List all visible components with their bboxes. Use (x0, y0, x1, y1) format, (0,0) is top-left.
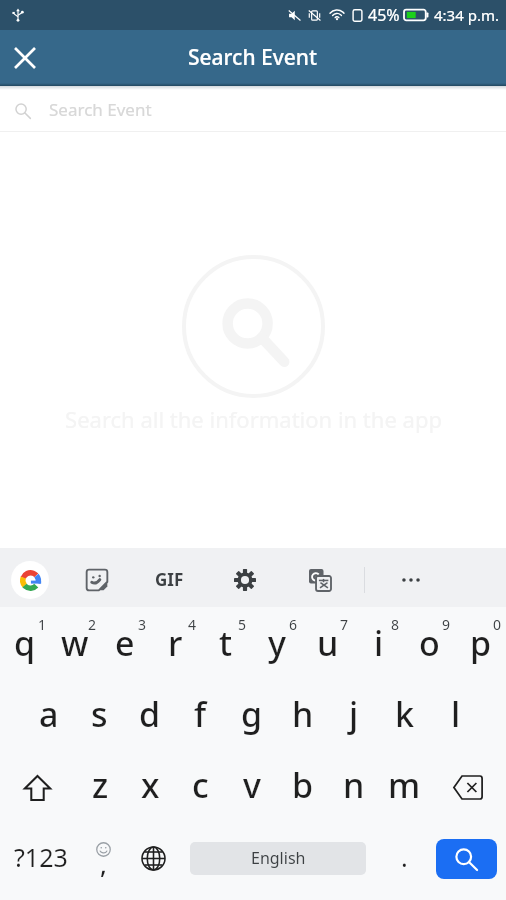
staticText: c (192, 762, 209, 808)
button[interactable]: ?123 (0, 823, 81, 894)
button[interactable]: More options (365, 550, 457, 609)
staticText: m (388, 762, 421, 808)
button[interactable]: Close (4, 37, 46, 79)
button[interactable]: Search Event (0, 90, 506, 131)
staticText: e (115, 620, 135, 666)
button[interactable]: t (200, 610, 251, 681)
button[interactable]: r (150, 610, 200, 681)
staticText: Search Event (188, 43, 318, 72)
staticText: 4 (188, 615, 197, 634)
staticText: d (139, 691, 161, 737)
staticText: z (92, 762, 109, 808)
button[interactable]: . (379, 823, 430, 894)
button[interactable]: n (328, 752, 379, 823)
button[interactable]: Backspace (430, 752, 506, 823)
staticText: f (194, 691, 207, 737)
staticText: t (219, 620, 233, 666)
staticText: 4:34 p.m. (434, 5, 499, 25)
staticText: 9 (442, 615, 451, 634)
button[interactable]: i (353, 610, 404, 681)
button[interactable]: v (226, 752, 277, 823)
staticText: ?123 (14, 840, 68, 874)
staticText: r (168, 620, 183, 666)
button[interactable]: d (124, 681, 175, 752)
staticText: Search all the information in the app (65, 404, 442, 434)
staticText: 45% (368, 4, 400, 26)
staticText: 6 (289, 615, 298, 634)
button[interactable]: j (328, 681, 379, 752)
staticText: w (61, 620, 89, 666)
button[interactable]: English (190, 842, 366, 875)
staticText: , (100, 847, 107, 881)
staticText: h (292, 691, 314, 737)
button[interactable]: q (0, 610, 50, 681)
button[interactable]: GIF (134, 550, 204, 609)
staticText: v (243, 762, 261, 808)
button[interactable]: a (24, 681, 74, 752)
button[interactable]: m (379, 752, 430, 823)
button[interactable]: p (455, 610, 506, 681)
button[interactable]: Translate (286, 550, 354, 609)
button[interactable]: Change language (124, 823, 177, 894)
button[interactable]: w (50, 610, 100, 681)
button[interactable]: l (430, 681, 481, 752)
staticText: 0 (493, 615, 502, 634)
staticText: 2 (88, 615, 97, 634)
button[interactable]: h (277, 681, 328, 752)
staticText: k (395, 691, 415, 737)
button[interactable]: Settings (204, 550, 286, 609)
staticText: a (39, 691, 59, 737)
staticText: 7 (340, 615, 349, 634)
staticText: j (349, 691, 359, 737)
button[interactable]: z (75, 752, 125, 823)
button[interactable]: , (81, 823, 124, 894)
staticText: 8 (391, 615, 400, 634)
staticText: u (317, 620, 339, 666)
button[interactable]: b (277, 752, 328, 823)
button[interactable]: o (404, 610, 455, 681)
staticText: 3 (138, 615, 147, 634)
button[interactable]: y (251, 610, 302, 681)
button[interactable]: k (379, 681, 430, 752)
staticText: q (14, 620, 36, 666)
staticText: English (251, 847, 306, 869)
staticText: g (241, 691, 263, 737)
button[interactable]: u (302, 610, 353, 681)
button[interactable]: s (74, 681, 124, 752)
button[interactable]: Google (0, 550, 60, 609)
staticText: Search Event (49, 98, 152, 121)
button[interactable]: c (175, 752, 226, 823)
staticText: . (401, 840, 408, 874)
staticText: s (91, 691, 108, 737)
staticText: n (343, 762, 365, 808)
staticText: l (451, 691, 461, 737)
staticText: b (292, 762, 314, 808)
button[interactable]: Sticker (60, 550, 134, 609)
button[interactable]: Shift (0, 752, 75, 823)
staticText: p (470, 620, 492, 666)
button[interactable]: g (226, 681, 277, 752)
button[interactable]: f (175, 681, 226, 752)
staticText: GIF (155, 568, 184, 591)
button[interactable]: x (125, 752, 175, 823)
button[interactable]: e (100, 610, 150, 681)
staticText: 5 (238, 615, 247, 634)
staticText: y (268, 620, 286, 666)
staticText: x (141, 762, 160, 808)
staticText: 1 (38, 615, 47, 634)
staticText: o (419, 620, 440, 666)
button[interactable]: Search (436, 839, 497, 879)
staticText: i (374, 620, 384, 666)
